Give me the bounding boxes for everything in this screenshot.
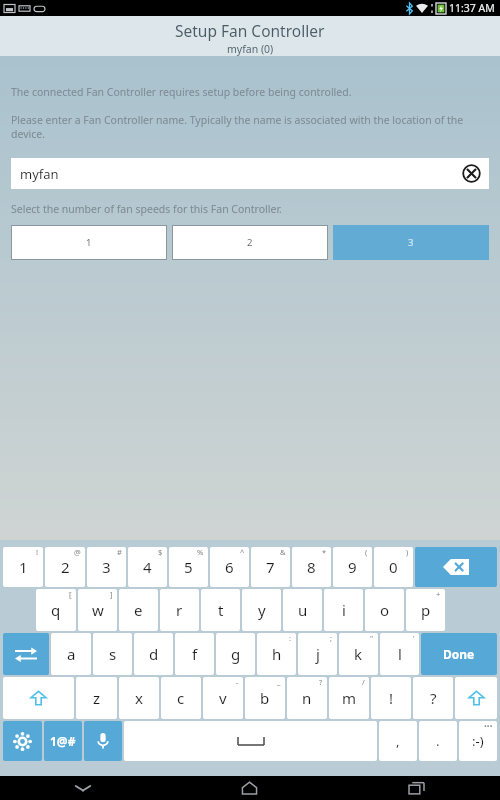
button[interactable]: p: [406, 589, 445, 631]
button[interactable]: Voice input: [84, 721, 122, 761]
staticText: j: [316, 644, 320, 664]
staticText: ": [370, 633, 374, 643]
staticText: :-): [472, 732, 484, 750]
staticText: #: [117, 547, 122, 557]
staticText: _: [277, 677, 281, 687]
button[interactable]: q: [36, 589, 76, 631]
staticText: b: [260, 688, 270, 708]
button[interactable]: e: [119, 589, 158, 631]
staticText: 5: [184, 557, 193, 577]
button[interactable]: 2: [45, 547, 85, 587]
button[interactable]: y: [242, 589, 281, 631]
staticText: @: [74, 547, 81, 557]
staticText: 9: [348, 557, 357, 577]
staticText: /: [362, 677, 365, 687]
button[interactable]: l: [380, 633, 419, 675]
button[interactable]: :-): [459, 721, 497, 761]
staticText: 4: [143, 557, 152, 577]
button[interactable]: 5: [169, 547, 208, 587]
staticText: u: [298, 600, 308, 620]
button[interactable]: Done: [421, 633, 497, 675]
button[interactable]: 6: [210, 547, 249, 587]
button[interactable]: v: [203, 677, 243, 719]
button[interactable]: 1: [3, 547, 43, 587]
button[interactable]: x: [119, 677, 159, 719]
staticText: :: [289, 633, 292, 643]
button[interactable]: a: [51, 633, 91, 675]
staticText: !: [36, 547, 39, 557]
staticText: h: [272, 644, 282, 664]
button[interactable]: 0: [374, 547, 413, 587]
button[interactable]: 1: [11, 225, 167, 260]
button[interactable]: z: [76, 677, 117, 719]
button[interactable]: d: [134, 633, 173, 675]
button[interactable]: Shift: [3, 677, 74, 719]
button[interactable]: .: [419, 721, 457, 761]
button[interactable]: Home: [166, 776, 333, 800]
staticText: l: [398, 644, 402, 664]
button[interactable]: r: [160, 589, 199, 631]
button[interactable]: w: [78, 589, 117, 631]
staticText: t: [218, 600, 224, 620]
staticText: 2: [61, 557, 70, 577]
button[interactable]: b: [245, 677, 285, 719]
button[interactable]: h: [257, 633, 296, 675]
staticText: *: [322, 547, 327, 557]
staticText: 1: [86, 236, 92, 249]
button[interactable]: 3: [87, 547, 126, 587]
staticText: 6: [225, 557, 234, 577]
button[interactable]: ?: [413, 677, 453, 719]
staticText: ): [406, 547, 409, 557]
button[interactable]: m: [329, 677, 369, 719]
staticText: 1@#: [50, 733, 76, 749]
button[interactable]: !: [371, 677, 411, 719]
staticText: !: [389, 688, 394, 708]
button[interactable]: g: [216, 633, 255, 675]
button[interactable]: o: [365, 589, 404, 631]
button[interactable]: Shift: [455, 677, 497, 719]
button[interactable]: ,: [379, 721, 417, 761]
staticText: .: [436, 732, 440, 750]
staticText: i: [342, 600, 346, 620]
button[interactable]: c: [161, 677, 201, 719]
button[interactable]: myfan: [11, 158, 489, 189]
staticText: +: [436, 589, 441, 599]
button[interactable]: t: [201, 589, 240, 631]
button[interactable]: k: [339, 633, 378, 675]
button[interactable]: n: [287, 677, 327, 719]
button[interactable]: Backspace: [415, 547, 497, 587]
button[interactable]: Clear text: [462, 164, 481, 183]
button[interactable]: i: [324, 589, 363, 631]
staticText: g: [231, 644, 241, 664]
staticText: e: [134, 600, 143, 620]
button[interactable]: 8: [292, 547, 331, 587]
button[interactable]: 7: [251, 547, 290, 587]
staticText: Done: [443, 646, 475, 662]
button[interactable]: 2: [172, 225, 328, 260]
staticText: c: [177, 688, 185, 708]
staticText: $: [158, 547, 163, 557]
staticText: %: [197, 547, 204, 557]
staticText: (: [365, 547, 368, 557]
button[interactable]: Space: [124, 721, 377, 761]
button[interactable]: 1@#: [44, 721, 82, 761]
button[interactable]: Tab: [3, 633, 49, 675]
staticText: ]: [110, 589, 113, 599]
staticText: 7: [266, 557, 275, 577]
button[interactable]: Recent apps: [333, 776, 500, 800]
button[interactable]: Settings: [3, 721, 42, 761]
button[interactable]: s: [93, 633, 132, 675]
button[interactable]: Hide keyboard: [0, 776, 166, 800]
button[interactable]: j: [298, 633, 337, 675]
button[interactable]: f: [175, 633, 214, 675]
staticText: ?: [430, 688, 437, 708]
staticText: s: [109, 644, 117, 664]
button[interactable]: 3: [333, 225, 489, 260]
button[interactable]: 9: [333, 547, 372, 587]
staticText: q: [51, 600, 61, 620]
button[interactable]: 4: [128, 547, 167, 587]
staticText: m: [342, 688, 357, 708]
button[interactable]: u: [283, 589, 322, 631]
staticText: 3: [408, 236, 414, 249]
staticText: o: [380, 600, 390, 620]
